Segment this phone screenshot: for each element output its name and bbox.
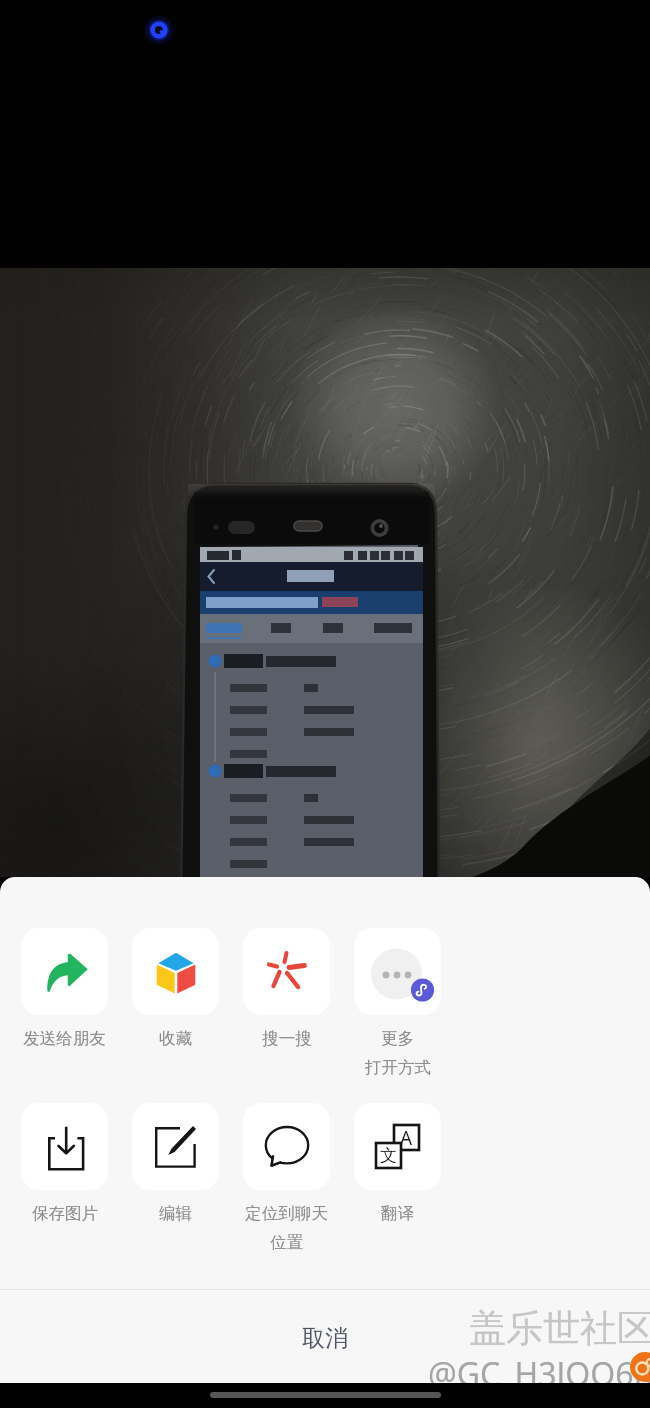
button[interactable]: Save image	[21, 1103, 108, 1224]
staticText: 发送给朋友	[23, 1028, 106, 1049]
button[interactable]: 取消	[0, 1290, 650, 1381]
staticText: 文	[380, 1145, 397, 1166]
button[interactable]: Edit	[132, 1103, 219, 1224]
staticText: 取消	[302, 1324, 348, 1353]
staticText: A	[400, 1125, 413, 1150]
staticText: 保存图片	[32, 1203, 98, 1224]
button[interactable]: Send to friend	[21, 928, 108, 1049]
staticText: 更多	[381, 1028, 414, 1049]
staticText: 编辑	[159, 1203, 192, 1224]
staticText: 搜一搜	[262, 1028, 312, 1049]
staticText: 打开方式	[365, 1057, 431, 1078]
button[interactable]: Locate in chat	[243, 1103, 330, 1253]
staticText: 盖乐世社区	[469, 1305, 650, 1352]
button[interactable]: Search	[243, 928, 330, 1049]
staticText: 位置	[270, 1232, 303, 1253]
button[interactable]: More	[354, 928, 441, 1078]
staticText: @GC_H3JQQ6K	[428, 1352, 650, 1383]
button[interactable]: Favorite	[132, 928, 219, 1049]
staticText: 收藏	[159, 1028, 192, 1049]
staticText: 翻译	[381, 1203, 414, 1224]
staticText: 定位到聊天	[245, 1203, 328, 1224]
button[interactable]: Translate	[354, 1103, 441, 1224]
